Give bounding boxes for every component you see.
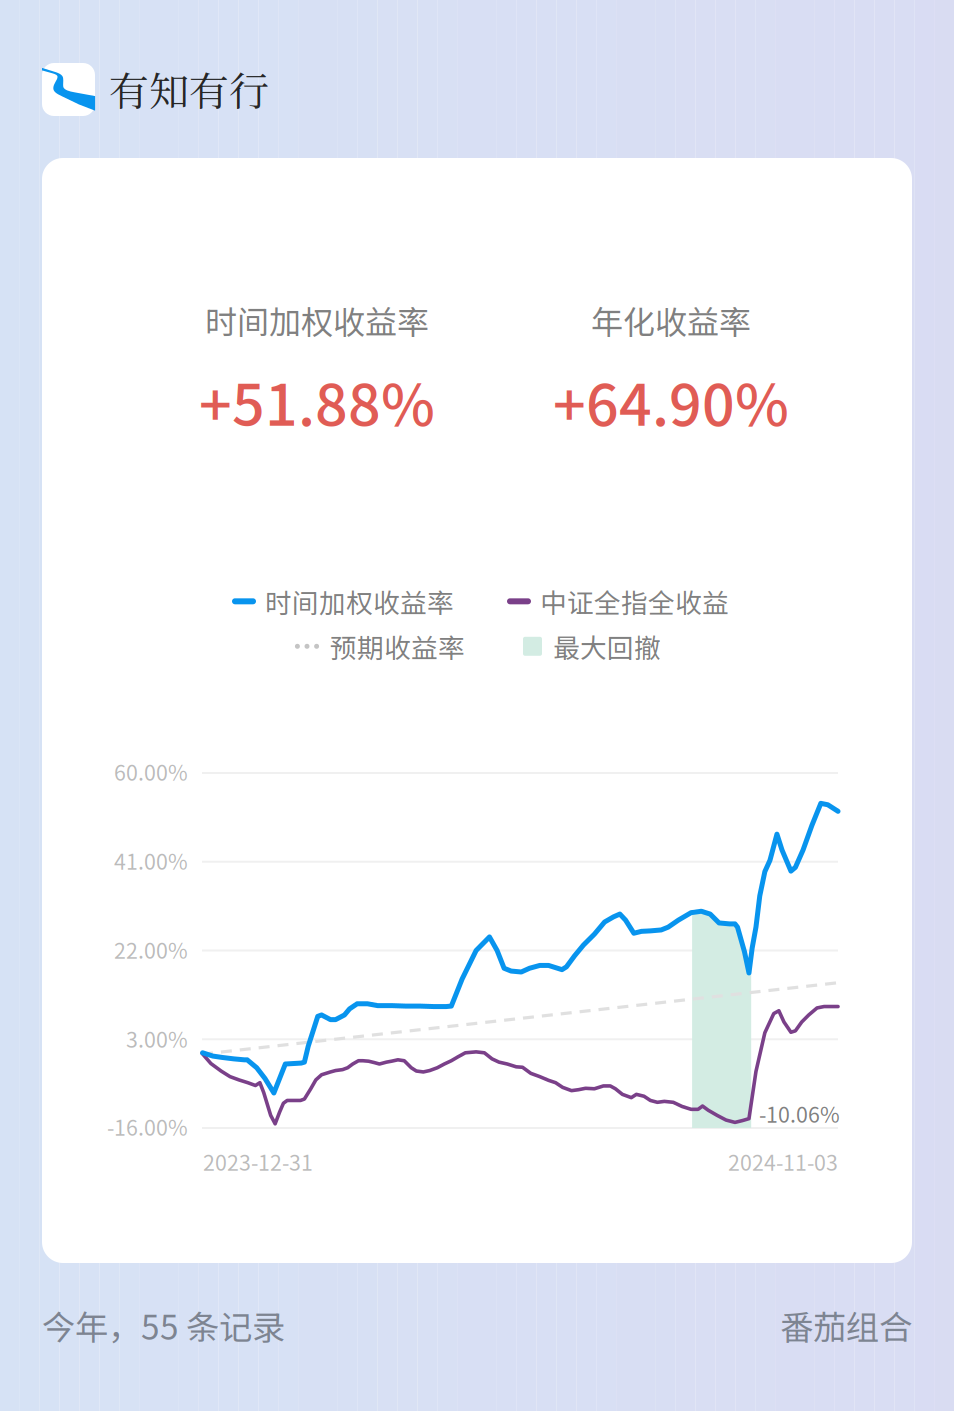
button[interactable]: 有知有行: [42, 60, 272, 116]
staticText: 时间加权收益率: [265, 582, 454, 621]
staticText: -16.00%: [107, 1111, 188, 1142]
staticText: 时间加权收益率: [205, 297, 429, 343]
staticText: 2024-11-03: [728, 1146, 838, 1177]
staticText: 最大回撤: [553, 627, 661, 666]
staticText: 今年，55 条记录: [42, 1301, 285, 1349]
button[interactable]: 番茄组合: [780, 1301, 912, 1349]
button[interactable]: 今年，55 条记录: [42, 1301, 285, 1349]
staticText: 41.00%: [114, 845, 188, 876]
staticText: 60.00%: [114, 756, 188, 787]
staticText: 22.00%: [114, 934, 188, 965]
staticText: 3.00%: [126, 1023, 188, 1054]
staticText: 有知有行: [109, 60, 269, 117]
staticText: +51.88%: [199, 359, 435, 442]
button[interactable]: 收益表现详情: [42, 158, 912, 1263]
staticText: 番茄组合: [780, 1301, 912, 1349]
staticText: 2023-12-31: [203, 1146, 313, 1177]
staticText: 年化收益率: [591, 297, 751, 343]
staticText: 中证全指全收益: [540, 582, 729, 621]
staticText: 预期收益率: [330, 627, 465, 666]
staticText: +64.90%: [553, 359, 789, 442]
staticText: -10.06%: [759, 1098, 840, 1129]
